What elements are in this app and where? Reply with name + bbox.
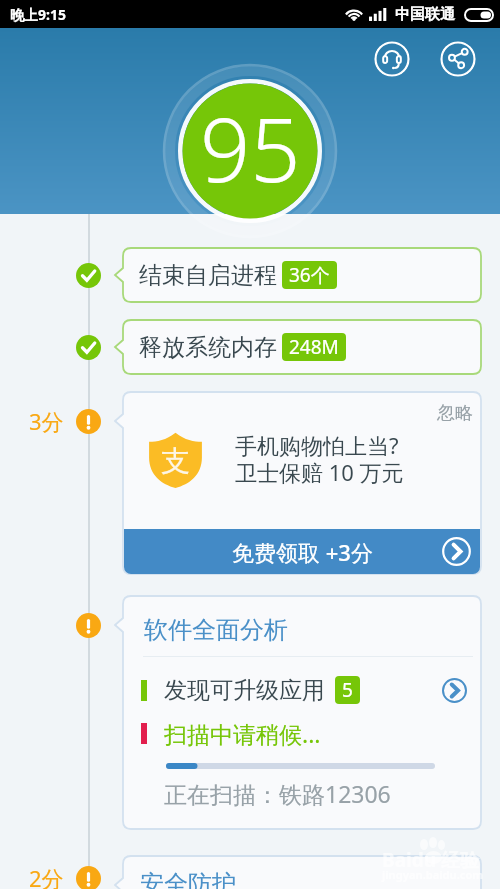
staticText: 5 — [342, 677, 353, 703]
button[interactable]: Customer service — [374, 41, 410, 77]
staticText: Baidu 经验 — [382, 847, 479, 873]
button[interactable]: Share — [440, 41, 476, 77]
staticText: 结束自启进程 — [139, 261, 277, 290]
staticText: 发现可升级应用 — [164, 676, 325, 705]
staticText: 支 — [161, 443, 190, 480]
staticText: 手机购物怕上当? — [235, 430, 399, 460]
staticText: 2分 — [29, 863, 64, 889]
button[interactable]: 释放系统内存 — [115, 319, 481, 375]
staticText: 248M — [289, 334, 339, 360]
staticText: 晚上9:15 — [10, 5, 66, 24]
staticText: 95 — [200, 88, 301, 208]
staticText: 36个 — [289, 262, 330, 288]
staticText: 正在扫描：铁路12306 — [164, 778, 391, 809]
staticText: 释放系统内存 — [139, 333, 277, 362]
staticText: 3分 — [29, 406, 64, 436]
staticText: 软件全面分析 — [144, 615, 288, 645]
button[interactable]: 忽略 — [425, 391, 481, 433]
button[interactable]: 结束自启进程 — [115, 247, 481, 303]
staticText: 中国联通 — [395, 5, 455, 24]
staticText: 扫描中请稍候... — [164, 718, 321, 749]
button[interactable]: 发现可升级应用 — [115, 672, 481, 708]
staticText: jingyan.baidu.com — [382, 867, 484, 882]
staticText: 安全防护 — [140, 869, 236, 889]
button[interactable]: 免费领取 +3分 — [124, 529, 480, 574]
staticText: 卫士保赔 10 万元 — [235, 457, 404, 487]
staticText: 免费领取 +3分 — [232, 537, 373, 567]
button[interactable]: 安全防护 — [115, 855, 481, 889]
